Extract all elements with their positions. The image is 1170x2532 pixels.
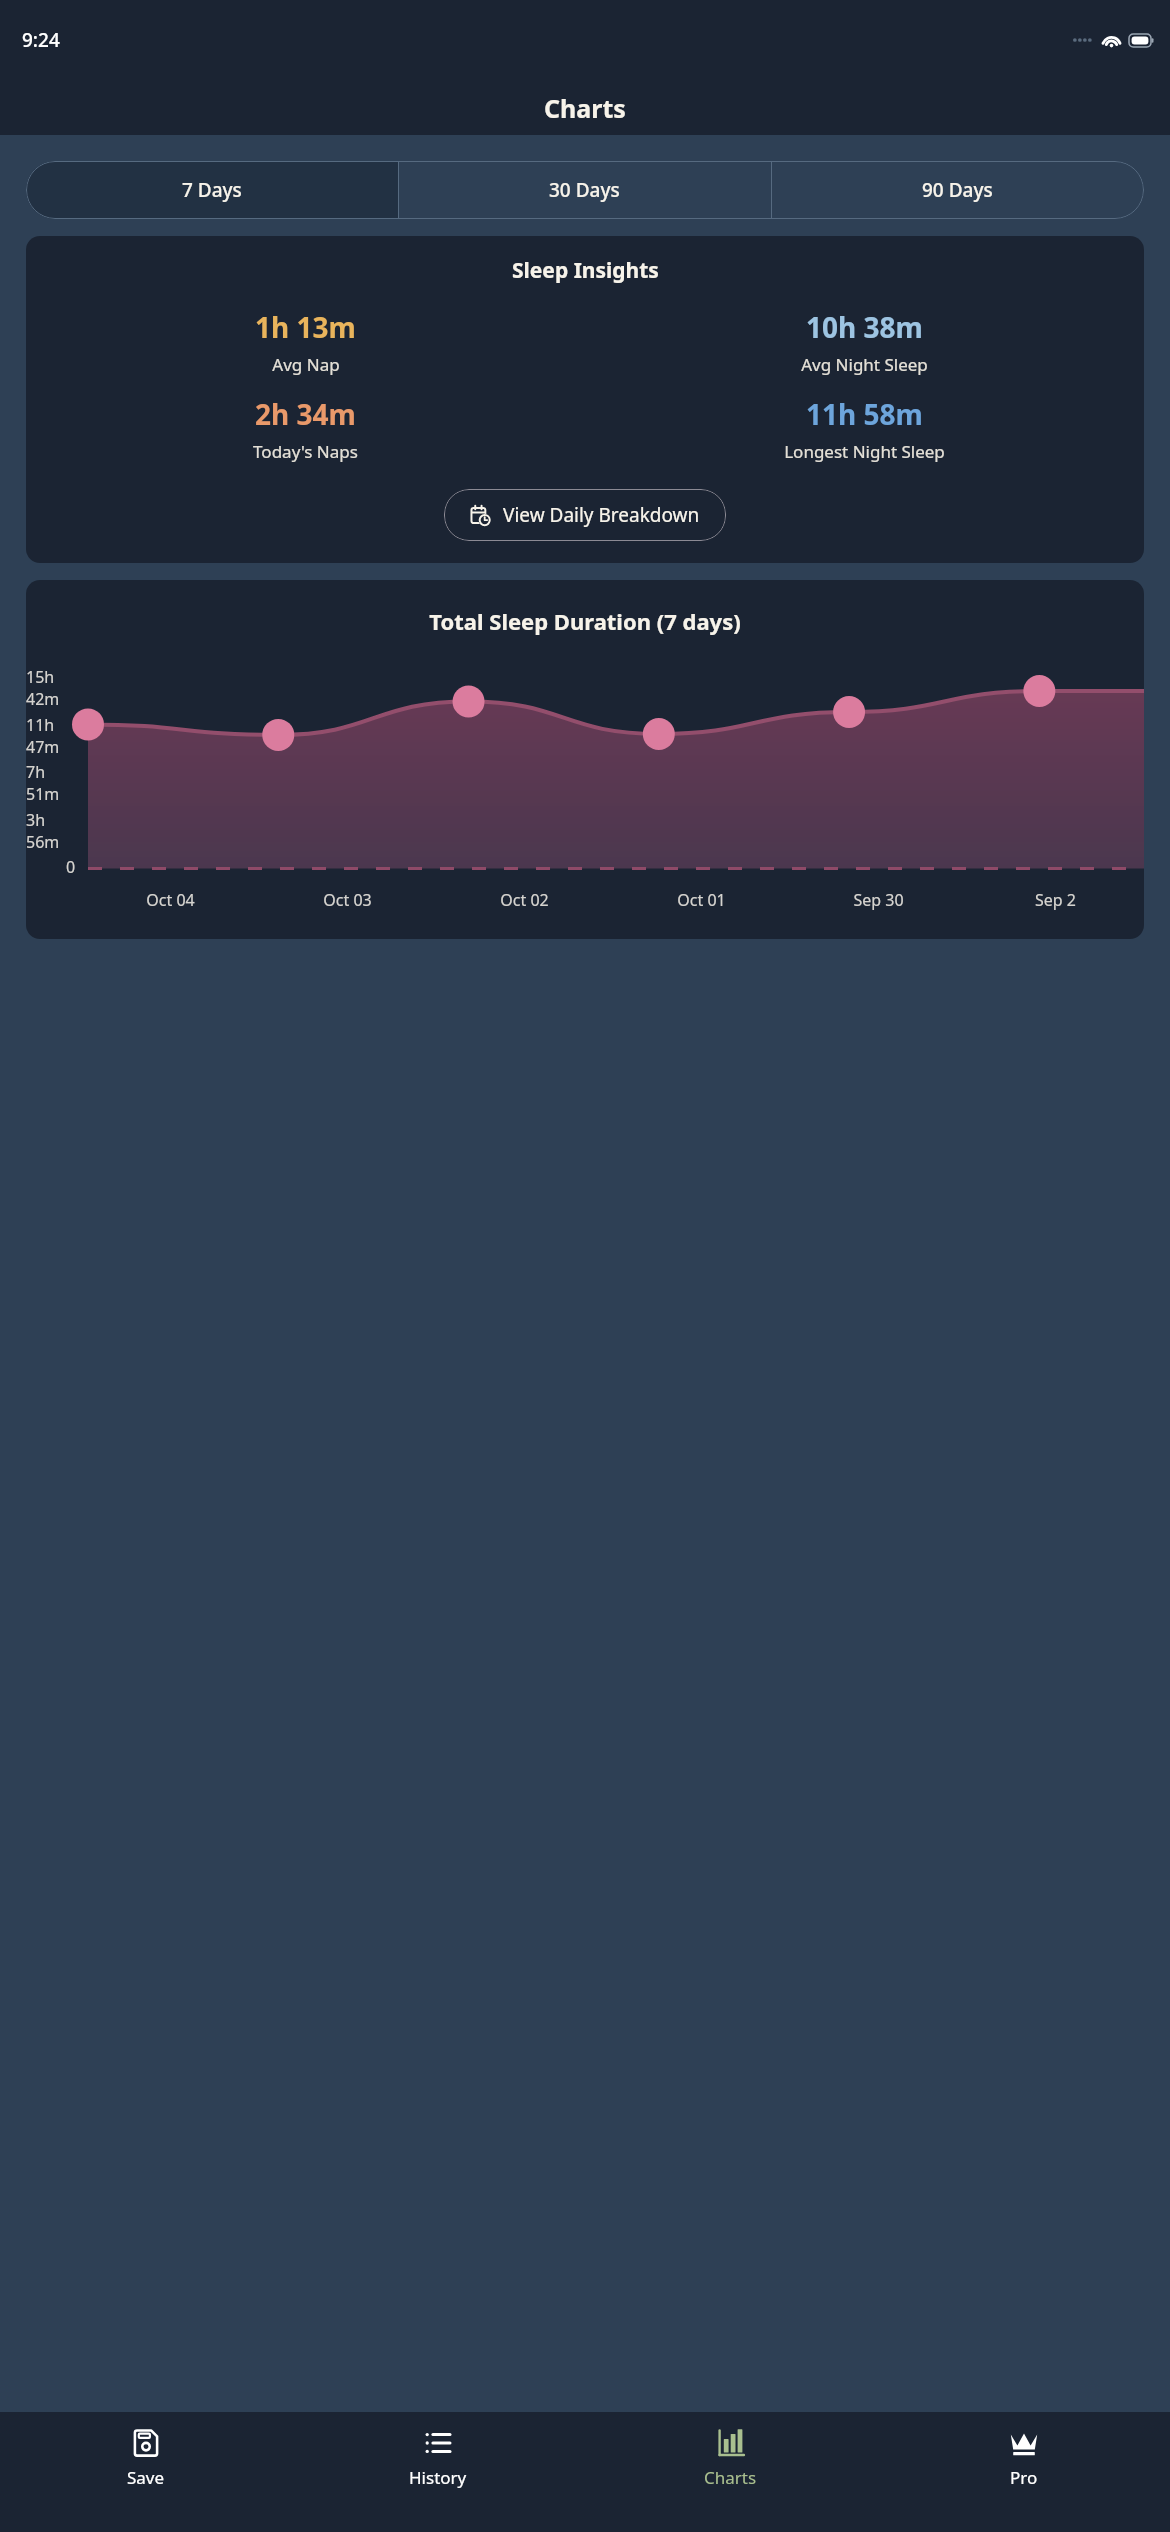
staticText: Avg Nap (272, 353, 340, 376)
staticText: 11h 58m (806, 395, 923, 433)
staticText: Sleep Insights (512, 256, 659, 285)
staticText: View Daily Breakdown (503, 502, 700, 528)
staticText: Oct 01 (613, 889, 790, 911)
staticText: 30 Days (549, 177, 620, 203)
staticText: 15h 42m (26, 666, 76, 710)
staticText: 3h 56m (26, 809, 76, 853)
staticText: History (409, 2466, 467, 2489)
button[interactable]: 7 Days (26, 161, 398, 219)
button[interactable]: 30 Days (398, 161, 771, 219)
staticText: Save (127, 2466, 165, 2489)
staticText: 1h 13m (255, 308, 356, 346)
staticText: Avg Night Sleep (801, 353, 928, 376)
staticText: 7h 51m (26, 761, 76, 805)
button[interactable]: View Daily Breakdown (444, 489, 726, 541)
button[interactable]: Save (0, 2412, 292, 2532)
button[interactable]: History (292, 2412, 584, 2532)
staticText: 9:24 (22, 27, 60, 53)
staticText: Oct 02 (436, 889, 613, 911)
button[interactable]: Pro (877, 2412, 1170, 2532)
staticText: 2h 34m (255, 395, 356, 433)
staticText: 7 Days (182, 177, 242, 203)
staticText: Oct 04 (82, 889, 259, 911)
staticText: Charts (544, 91, 626, 125)
staticText: Charts (704, 2466, 757, 2489)
staticText: Longest Night Sleep (784, 440, 945, 463)
staticText: Total Sleep Duration (7 days) (26, 606, 1144, 636)
staticText: Sep 30 (790, 889, 967, 911)
staticText: 90 Days (922, 177, 993, 203)
staticText: 11h 47m (26, 714, 76, 758)
staticText: 10h 38m (806, 308, 923, 346)
staticText: 0 (66, 856, 76, 878)
staticText: Pro (1010, 2466, 1038, 2489)
button[interactable]: 90 Days (771, 161, 1144, 219)
staticText: Oct 03 (259, 889, 436, 911)
staticText: Sep 2 (967, 889, 1144, 911)
button[interactable]: Charts (584, 2412, 877, 2532)
staticText: Today's Naps (253, 440, 358, 463)
